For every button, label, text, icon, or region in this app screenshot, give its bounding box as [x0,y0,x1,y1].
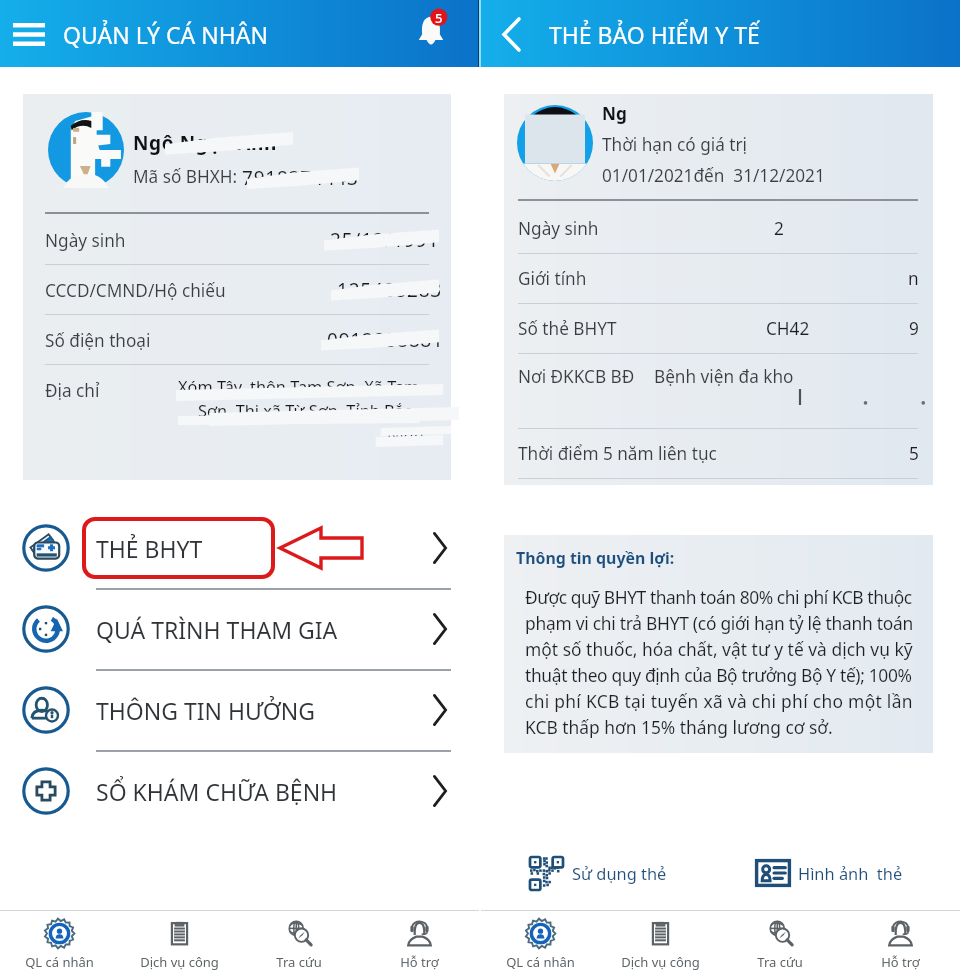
staticText: 01/01/2021đến 31/12/2021 [602,164,825,187]
staticText: Giới tính [518,267,587,290]
staticText: Sơn, Thị xã Từ Sơn, Tỉnh Bắc [198,400,412,422]
button[interactable]: Notifications [405,2,457,54]
staticText: Tra cứu [276,953,322,971]
staticText: Hỗ trợ [400,953,439,971]
staticText: phạm vi chi trả BHYT (có giới hạn tỷ lệ … [525,611,913,635]
staticText: SỔ KHÁM CHỮA BỆNH [96,776,338,807]
staticText: Ng [602,102,627,125]
staticText: Xóm Tây, thôn Tam Sơn, Xã Tam [178,376,420,398]
button[interactable]: Sử dụng thẻ [530,853,667,893]
staticText: Địa chỉ [45,379,100,402]
staticText: Dịch vụ công [140,953,219,971]
staticText: Thời điểm 5 năm liên tục [518,442,717,465]
button[interactable]: Dịch vụ công [119,911,239,973]
button[interactable]: Hỗ trợ [840,911,960,973]
button[interactable]: Menu [5,10,53,58]
staticText: Bệnh viện đa kho [654,365,794,388]
staticText: 2 [774,217,784,240]
staticText: Ngày sinh [518,217,599,240]
staticText: Ngô Ngọc Anh [133,130,277,156]
staticText: Thông tin quyền lợi: [516,547,675,569]
staticText: CH42 [766,317,810,340]
staticText: THÔNG TIN HƯỞNG [96,695,316,726]
staticText: một số thuốc, hóa chất, vật tư y tế và d… [525,637,913,661]
staticText: Ngày sinh [45,229,126,252]
staticText: 9 [909,317,919,340]
staticText: Hình ảnh thẻ [798,862,903,884]
button[interactable]: Tra cứu [239,911,359,973]
staticText: QUẢN LÝ CÁ NHÂN [63,19,268,50]
staticText: 5 [435,9,443,27]
staticText: THẺ BẢO HIỂM Y TẾ [549,19,760,50]
staticText: Mã số BHXH: [133,165,242,188]
button[interactable]: QL cá nhân [0,911,119,973]
button[interactable]: QL cá nhân [481,911,600,973]
staticText: Được quỹ BHYT thanh toán 80% chi phí KCB… [525,585,912,609]
staticText: CCCD/CMND/Hộ chiếu [45,279,226,302]
staticText: chi phí KCB tại tuyến xã và chi phí cho … [525,689,913,713]
button[interactable]: Back [487,10,535,58]
staticText: Tra cứu [757,953,803,971]
staticText: 5 [909,442,919,465]
staticText: Dịch vụ công [621,953,700,971]
staticText: thuật theo quy định của Bộ trưởng Bộ Y t… [525,663,912,687]
staticText: KCB thấp hơn 15% tháng lương cơ sở. [525,715,833,739]
staticText: 0912888881 [327,327,444,353]
staticText: n [908,267,919,290]
staticText: Số điện thoại [45,329,151,352]
staticText: Số thẻ BHYT [518,317,617,340]
button[interactable]: Dịch vụ công [600,911,720,973]
button[interactable]: THÔNG TIN HƯỞNG [0,670,479,750]
staticText: Sử dụng thẻ [572,862,667,884]
button[interactable]: SỔ KHÁM CHỮA BỆNH [0,751,479,831]
staticText: 25/12/1991 [330,227,440,253]
button[interactable]: Tra cứu [720,911,840,973]
staticText: Nơi ĐKKCB BĐ [518,365,635,388]
staticText: Thời hạn có giá trị [602,133,747,156]
button[interactable]: THẺ BHYT [0,508,479,588]
staticText: QL cá nhân [25,953,94,971]
staticText: THẺ BHYT [96,533,203,564]
staticText: 125488283 [337,277,443,303]
staticText: Hỗ trợ [881,953,920,971]
staticText: QL cá nhân [506,953,575,971]
button[interactable]: Hỗ trợ [359,911,479,973]
button[interactable]: QUÁ TRÌNH THAM GIA [0,589,479,669]
staticText: Ninh [387,424,424,446]
staticText: 7918374443 [242,165,359,191]
staticText: QUÁ TRÌNH THAM GIA [96,614,338,645]
button[interactable]: Hình ảnh thẻ [755,853,903,893]
